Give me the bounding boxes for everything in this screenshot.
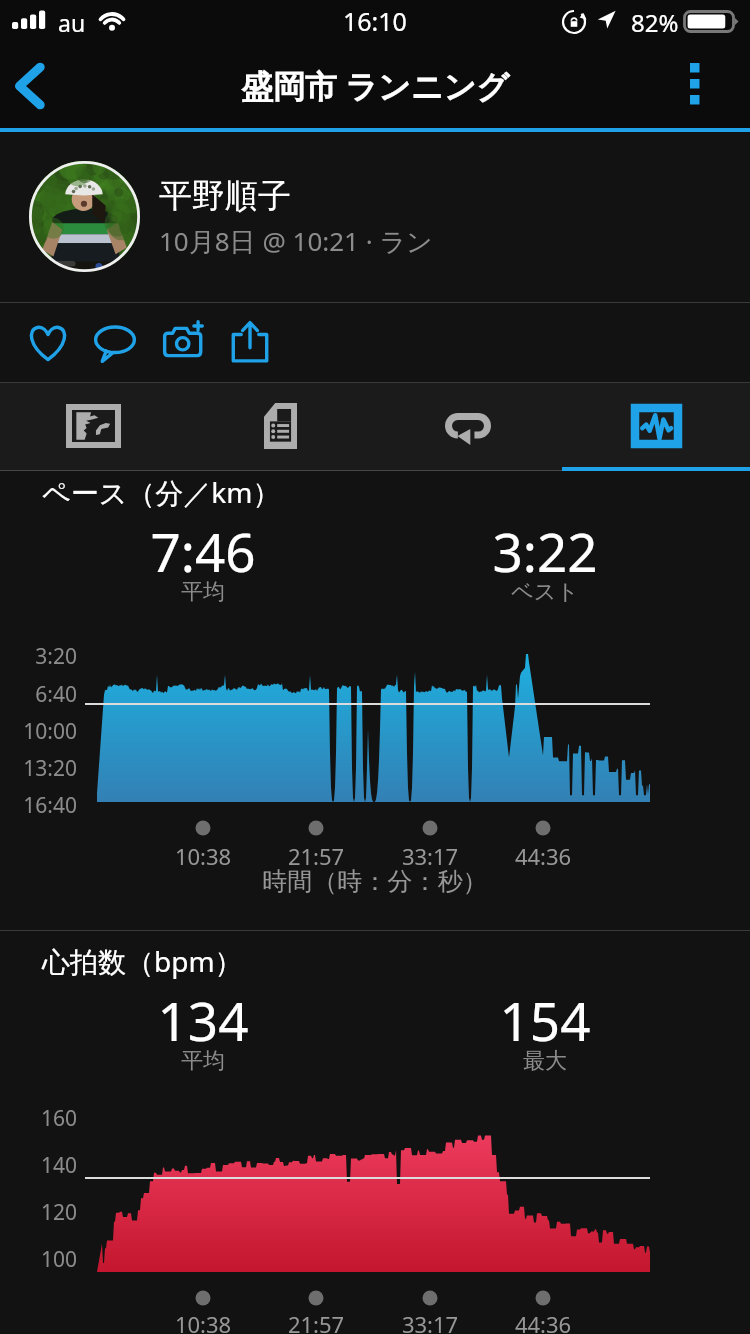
staticText: 100 — [12, 1245, 77, 1274]
staticText: 33:17 — [370, 841, 490, 871]
button[interactable]: Splits — [187, 383, 374, 471]
staticText: 7:46 — [93, 515, 313, 587]
button[interactable]: Comment — [82, 309, 148, 375]
staticText: 10:38 — [143, 1309, 263, 1334]
staticText: 140 — [12, 1151, 77, 1180]
staticText: 10月8日 @ 10:21 · ラン — [159, 223, 433, 259]
staticText: 82% — [631, 6, 679, 39]
staticText: 最大 — [435, 1047, 655, 1075]
staticText: 時間（時：分：秒） — [0, 866, 750, 897]
staticText: 21:57 — [256, 1309, 376, 1334]
staticText: au — [58, 7, 86, 38]
button[interactable]: Map — [0, 383, 187, 471]
staticText: 平野順子 — [159, 175, 291, 217]
staticText: 134 — [93, 984, 313, 1056]
button[interactable]: 平野順子 — [0, 132, 750, 302]
staticText: 21:57 — [256, 841, 376, 871]
staticText: 16:40 — [12, 791, 77, 820]
button[interactable]: Share — [217, 309, 283, 375]
button[interactable]: Laps — [374, 383, 562, 471]
staticText: ベスト — [435, 578, 655, 606]
staticText: 3:20 — [12, 642, 77, 671]
staticText: 10:38 — [143, 841, 263, 871]
staticText: 33:17 — [370, 1309, 490, 1334]
staticText: 心拍数（bpm） — [42, 942, 243, 980]
staticText: 16:10 — [343, 4, 407, 38]
staticText: 平均 — [93, 578, 313, 606]
staticText: 平均 — [93, 1047, 313, 1075]
button[interactable]: Analysis — [562, 383, 750, 471]
button[interactable]: More options — [660, 44, 750, 128]
button[interactable]: Like — [15, 309, 81, 375]
staticText: 120 — [12, 1198, 77, 1227]
staticText: 154 — [435, 984, 655, 1056]
staticText: 44:36 — [483, 841, 603, 871]
staticText: 6:40 — [12, 680, 77, 709]
button[interactable]: Add photo — [151, 309, 217, 375]
staticText: 3:22 — [435, 515, 655, 587]
staticText: 10:00 — [12, 717, 77, 746]
staticText: 160 — [12, 1104, 77, 1133]
staticText: 盛岡市 ランニング — [241, 64, 510, 108]
staticText: 13:20 — [12, 754, 77, 783]
staticText: ペース（分／km） — [42, 473, 281, 511]
staticText: 44:36 — [483, 1309, 603, 1334]
button[interactable]: Back — [0, 44, 72, 128]
